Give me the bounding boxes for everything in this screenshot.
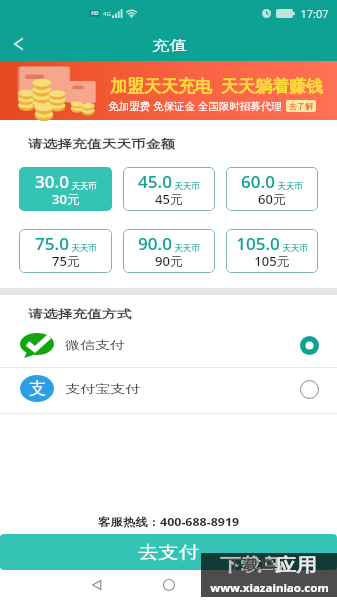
staticText: HD xyxy=(91,10,99,17)
button[interactable]: 支 xyxy=(0,368,337,413)
staticText: 30元 xyxy=(52,190,80,208)
staticText: 去了解 xyxy=(289,101,313,111)
staticText: 105.0 xyxy=(236,232,280,255)
button[interactable]: 去支付 xyxy=(0,534,337,570)
staticText: 请选择充值方式 xyxy=(28,307,132,321)
button[interactable]: 微信支付 xyxy=(0,327,337,367)
staticText: 17:07 xyxy=(300,6,329,21)
button[interactable]: 加盟天天充电 天天躺着赚钱 xyxy=(0,61,337,120)
button[interactable]: 30.0 xyxy=(19,167,112,211)
button[interactable]: 45.0 xyxy=(123,167,215,211)
staticText: 微信支付 xyxy=(65,338,125,352)
button[interactable]: 90.0 xyxy=(123,229,215,273)
staticText: 45.0 xyxy=(138,170,172,193)
staticText: www.xiazainiao.com xyxy=(210,580,329,595)
staticText: 加盟天天充电 天天躺着赚钱 xyxy=(110,74,323,97)
button[interactable]: Back xyxy=(0,26,37,61)
staticText: 天天币 xyxy=(71,181,97,192)
staticText: 支付宝支付 xyxy=(65,382,140,396)
staticText: 充值 xyxy=(152,37,187,54)
staticText: 30.0 xyxy=(35,170,69,193)
staticText: 客服热线：400-688-8919 xyxy=(98,514,239,529)
staticText: 天天币 xyxy=(174,243,200,254)
button[interactable]: 60.0 xyxy=(226,167,318,211)
button[interactable]: 去了解 xyxy=(289,101,313,111)
staticText: 天天币 xyxy=(282,243,308,254)
staticText: 应用 xyxy=(275,554,317,577)
staticText: 75元 xyxy=(52,252,80,270)
staticText: 天天币 xyxy=(277,181,303,192)
button[interactable]: 105.0 xyxy=(226,229,318,273)
button[interactable]: Back xyxy=(80,570,114,600)
staticText: 90.0 xyxy=(138,232,172,255)
staticText: 免加盟费 免保证金 全国限时招募代理 xyxy=(108,99,282,113)
staticText: 天天币 xyxy=(174,181,200,192)
staticText: 下载鸟 xyxy=(220,554,282,577)
staticText: 45元 xyxy=(155,190,183,208)
staticText: 75.0 xyxy=(35,232,69,255)
staticText: 105元 xyxy=(254,252,290,270)
button[interactable]: 75.0 xyxy=(19,229,112,273)
staticText: 支 xyxy=(29,378,46,399)
button[interactable]: Home xyxy=(152,570,186,600)
staticText: 90元 xyxy=(155,252,183,270)
staticText: 去支付 xyxy=(138,542,199,563)
staticText: 4G xyxy=(103,10,111,18)
button[interactable]: Select Alipay xyxy=(299,379,319,399)
staticText: 60元 xyxy=(258,190,286,208)
staticText: 下载鸟 xyxy=(227,557,275,575)
button[interactable]: Select WeChat Pay xyxy=(299,335,319,355)
staticText: 请选择充值天天币金额 xyxy=(28,137,175,151)
staticText: 天天币 xyxy=(71,243,97,254)
staticText: 60.0 xyxy=(241,170,275,193)
